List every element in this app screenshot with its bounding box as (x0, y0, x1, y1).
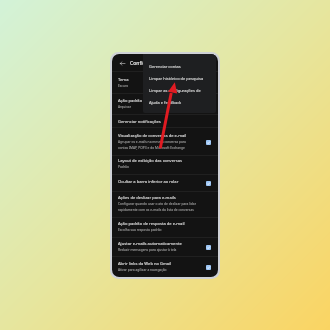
staticText: Gerenciar contas (149, 64, 181, 69)
staticText: Escuro (118, 84, 129, 88)
staticText: Ações de deslizar para e-mails (118, 195, 176, 201)
staticText: Limpar histórico de pesquisa (149, 76, 204, 81)
staticText: Agrupar os e-mails na mesma conversa par… (118, 140, 186, 144)
staticText: Ativar para agilizar a navegação (118, 268, 167, 272)
staticText: Layout de exibição das conversas (118, 158, 182, 164)
button[interactable]: Ajustar e-mails automaticamente (112, 238, 218, 257)
button[interactable]: Visualização de conversas de e-mail (112, 128, 218, 156)
button[interactable]: Ação padrão de resposta de e-mail (112, 218, 218, 238)
staticText: Limpar as configurações de imagens (149, 88, 216, 93)
staticText: contas IMAP, POP3 e do Microsoft Exchang… (118, 146, 185, 150)
button[interactable]: Limpar as configurações de imagens (149, 84, 216, 96)
button[interactable]: Abrir links da Web no Gmail (112, 257, 218, 277)
staticText: Abrir links da Web no Gmail (118, 261, 172, 267)
staticText: Configurar quando usar o ato de deslizar… (118, 202, 197, 206)
staticText: rapidamente com os e-mails da lista de c… (118, 208, 194, 212)
staticText: Arquivar (118, 105, 132, 109)
button[interactable]: Tema (112, 72, 218, 94)
staticText: Escolha sua resposta padrão (118, 228, 162, 232)
button[interactable]: Ações de deslizar para e-mails (112, 192, 218, 218)
button[interactable]: Ação padrão (112, 94, 218, 115)
button[interactable]: Gerenciar notificações (112, 115, 218, 128)
staticText: Configurações (130, 60, 165, 67)
staticText: Ajustar e-mails automaticamente (118, 241, 182, 247)
staticText: Gerenciar notificações (118, 119, 161, 125)
staticText: Visualização de conversas de e-mail (118, 133, 187, 139)
staticText: Reduzir mensagens para ajustar à tela (118, 248, 177, 252)
button[interactable]: Layout de exibição das conversas (112, 156, 218, 175)
button[interactable]: Ajuda e feedback (149, 96, 216, 108)
staticText: Tema (118, 77, 129, 83)
button[interactable]: Voltar (118, 59, 127, 68)
staticText: Ação padrão de resposta de e-mail (118, 221, 185, 227)
button[interactable]: Gerenciar contas (149, 60, 216, 72)
staticText: Ocultar a barra inferior ao rolar (118, 179, 179, 185)
staticText: Ação padrão (118, 98, 143, 104)
staticText: Padrão (118, 165, 129, 169)
button[interactable]: Limpar histórico de pesquisa (149, 72, 216, 84)
button[interactable]: Ocultar a barra inferior ao rolar (112, 175, 218, 192)
staticText: Ajuda e feedback (149, 100, 182, 105)
